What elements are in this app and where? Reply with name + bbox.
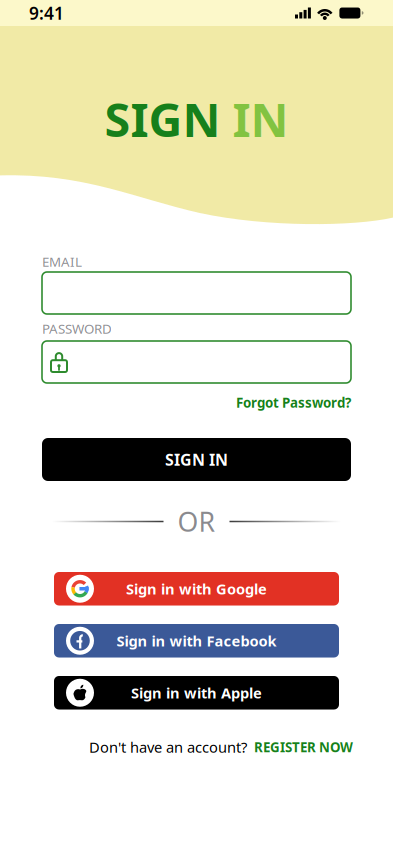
staticText: Forgot Password?: [236, 394, 351, 411]
staticText: EMAIL: [42, 253, 82, 270]
button[interactable]: Sign in with Facebook: [54, 624, 339, 657]
staticText: PASSWORD: [42, 320, 112, 337]
button[interactable]: Sign in with Apple: [54, 676, 339, 709]
button[interactable]: Sign in with Google: [54, 572, 339, 605]
staticText: Sign in with Google: [126, 579, 267, 598]
button[interactable]: SIGN IN: [42, 438, 351, 481]
staticText: Sign in with Facebook: [116, 631, 276, 650]
staticText: Don't have an account?: [89, 737, 247, 757]
staticText: IN: [220, 88, 288, 150]
button[interactable]: REGISTER NOW: [254, 738, 353, 756]
button[interactable]: Forgot Password?: [236, 394, 351, 411]
staticText: SIGN IN: [165, 449, 228, 470]
staticText: Sign in with Apple: [131, 683, 262, 702]
staticText: OR: [177, 504, 215, 539]
staticText: REGISTER NOW: [254, 738, 353, 756]
staticText: 9:41: [29, 1, 64, 24]
staticText: SIGN: [104, 88, 220, 150]
